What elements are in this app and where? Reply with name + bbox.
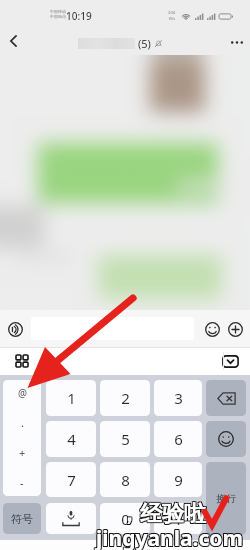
button[interactable]: @ xyxy=(3,380,41,496)
staticText: . xyxy=(21,415,24,430)
staticText: 1 xyxy=(67,388,76,408)
staticText: ，经验啦 xyxy=(118,500,206,528)
button[interactable]: Emoji xyxy=(201,318,223,340)
button[interactable]: 符号 xyxy=(3,503,41,534)
button[interactable]: Keyboard layout xyxy=(12,351,32,371)
staticText: jingyanla.com xyxy=(96,523,243,550)
staticText: 换行 xyxy=(216,492,236,505)
staticText: 10:19 xyxy=(66,9,92,23)
button[interactable]: 1 xyxy=(46,380,96,416)
staticText: . xyxy=(176,509,181,529)
staticText: + xyxy=(19,445,26,460)
button[interactable] xyxy=(31,317,194,340)
button[interactable] xyxy=(206,421,246,457)
staticText: 9 xyxy=(174,470,183,490)
button[interactable]: 9 xyxy=(154,462,202,497)
staticText: @ xyxy=(18,386,27,400)
button[interactable]: Back xyxy=(0,28,26,54)
button[interactable]: . xyxy=(154,503,202,534)
staticText: jingyanla.com xyxy=(95,525,242,550)
staticText: jingyanla.com xyxy=(95,523,242,550)
staticText: 7 xyxy=(67,470,76,490)
staticText: ，经验啦 xyxy=(119,500,207,528)
button[interactable]: 3 xyxy=(154,380,202,416)
staticText: B/s xyxy=(169,16,176,22)
button[interactable]: 5 xyxy=(100,421,150,457)
staticText: ，经验啦 xyxy=(117,499,205,527)
staticText: ，经验啦 xyxy=(117,501,205,529)
staticText: 5 xyxy=(121,429,130,449)
staticText: 4 xyxy=(67,429,76,449)
staticText: jingyanla.com xyxy=(97,523,244,550)
staticText: 中国移动 xyxy=(50,9,66,14)
staticText: ，经验啦 xyxy=(118,499,206,527)
staticText: jingyanla.com xyxy=(97,525,244,550)
staticText: jingyanla.com xyxy=(96,524,243,550)
staticText: 8 xyxy=(121,470,130,490)
staticText: 3 xyxy=(174,388,183,408)
staticText: jingyanla.com xyxy=(97,524,244,550)
button[interactable]: 2 xyxy=(100,380,150,416)
staticText: jingyanla.com xyxy=(95,524,242,550)
button[interactable]: 8 xyxy=(100,462,150,497)
button[interactable]: 换行 xyxy=(206,462,246,535)
button[interactable]: Hide keyboard xyxy=(219,350,241,372)
staticText: ，经验啦 xyxy=(117,500,205,528)
staticText: jingyanla.com xyxy=(96,525,243,550)
staticText: 0 xyxy=(121,509,130,529)
staticText: - xyxy=(20,475,24,490)
button[interactable]: More options xyxy=(224,29,250,55)
staticText: 204 xyxy=(168,10,176,16)
staticText: 中国电信 xyxy=(50,14,66,19)
button[interactable] xyxy=(46,503,96,534)
staticText: 符号 xyxy=(11,512,33,526)
staticText: ，经验啦 xyxy=(118,501,206,529)
button[interactable] xyxy=(206,380,246,416)
button[interactable]: 4 xyxy=(46,421,96,457)
staticText: (5) xyxy=(138,36,151,51)
button[interactable]: More functions xyxy=(224,318,246,340)
button[interactable]: 7 xyxy=(46,462,96,497)
staticText: 2 xyxy=(121,388,130,408)
staticText: ，经验啦 xyxy=(119,499,207,527)
button[interactable]: 0 xyxy=(100,503,150,534)
button[interactable]: 6 xyxy=(154,421,202,457)
staticText: ，经验啦 xyxy=(119,501,207,529)
button[interactable]: Voice input xyxy=(4,318,26,340)
staticText: 6 xyxy=(174,429,183,449)
